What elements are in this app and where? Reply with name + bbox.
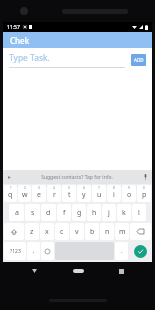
staticText: s (31, 208, 35, 218)
button[interactable]: Chek (3, 32, 152, 48)
staticText: z (30, 227, 34, 237)
button[interactable]: Type Task. (9, 52, 125, 68)
staticText: 4 (53, 186, 55, 190)
staticText: 3 (38, 186, 40, 190)
button[interactable]: h (87, 204, 101, 221)
staticText: . (121, 247, 123, 255)
button[interactable]: Shift (4, 223, 24, 240)
button[interactable]: j (102, 204, 116, 221)
button[interactable]: Enter (134, 245, 147, 258)
staticText: f (63, 208, 66, 218)
staticText: x (45, 227, 49, 237)
staticText: b (90, 227, 95, 237)
button[interactable]: l (132, 204, 146, 221)
staticText: 0 (143, 186, 145, 190)
staticText: h (92, 208, 97, 218)
button[interactable]: 0 (137, 185, 151, 202)
button[interactable]: Back (27, 264, 41, 278)
staticText: l (138, 208, 140, 218)
staticText: y (82, 190, 86, 200)
staticText: 5 (68, 186, 70, 190)
staticText: q (8, 190, 13, 200)
staticText: 1 (10, 186, 12, 190)
button[interactable]: c (55, 223, 69, 240)
staticText: n (105, 227, 110, 237)
button[interactable]: . (115, 242, 128, 260)
staticText: m (119, 227, 126, 237)
staticText: ?123 (10, 248, 21, 255)
button[interactable]: b (85, 223, 99, 240)
button[interactable]: 3 (32, 185, 46, 202)
staticText: r (53, 190, 56, 200)
button[interactable]: g (72, 204, 86, 221)
staticText: t (68, 190, 71, 200)
button[interactable]: Recents (114, 264, 128, 278)
button[interactable]: ?123 (4, 242, 26, 260)
button[interactable]: Voice input (141, 173, 149, 181)
staticText: e (37, 190, 41, 200)
staticText: Chek (10, 35, 30, 46)
button[interactable]: 4 (47, 185, 61, 202)
button[interactable]: 7 (92, 185, 106, 202)
button[interactable]: m (115, 223, 129, 240)
staticText: 9 (128, 186, 130, 190)
button[interactable]: n (100, 223, 114, 240)
staticText: 6 (83, 186, 85, 190)
button[interactable]: k (117, 204, 131, 221)
button[interactable]: Emoji (41, 242, 54, 260)
staticText: u (97, 190, 102, 200)
button[interactable]: 1 (4, 185, 17, 202)
button[interactable]: a (9, 204, 24, 221)
staticText: 11:57 (7, 24, 20, 31)
button[interactable]: Expand suggestions (6, 174, 13, 181)
button[interactable]: s (25, 204, 40, 221)
button[interactable]: x (40, 223, 54, 240)
staticText: c (60, 227, 64, 237)
button[interactable]: d (41, 204, 56, 221)
staticText: a (15, 208, 19, 218)
staticText: k (122, 208, 126, 218)
button[interactable]: Suggest contacts? Tap for info. (13, 174, 141, 181)
button[interactable]: 2 (18, 185, 31, 202)
staticText: j (108, 208, 110, 218)
button[interactable]: 5 (62, 185, 76, 202)
staticText: Type Task. (9, 52, 50, 64)
staticText: o (127, 190, 132, 200)
staticText: , (33, 247, 35, 255)
button[interactable]: , (27, 242, 40, 260)
button[interactable]: 6 (77, 185, 91, 202)
staticText: ADD (134, 57, 144, 63)
staticText: p (142, 190, 147, 200)
staticText: 8 (113, 186, 115, 190)
button[interactable]: z (25, 223, 39, 240)
button[interactable]: v (70, 223, 84, 240)
button[interactable]: ADD (131, 54, 146, 66)
staticText: 7 (98, 186, 100, 190)
staticText: i (113, 190, 115, 200)
button[interactable]: Backspace (130, 223, 151, 240)
staticText: w (22, 190, 28, 200)
staticText: 2 (24, 186, 26, 190)
staticText: v (75, 227, 79, 237)
button[interactable]: f (57, 204, 71, 221)
button[interactable]: 8 (107, 185, 121, 202)
staticText: d (46, 208, 51, 218)
button[interactable]: 9 (122, 185, 136, 202)
staticText: g (77, 208, 82, 218)
button[interactable]: Home (69, 264, 87, 278)
